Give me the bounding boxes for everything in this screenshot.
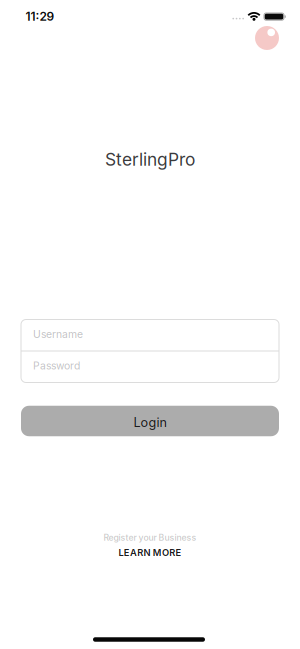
button[interactable]: LEARN MORE <box>119 547 181 558</box>
staticText: Register your Business <box>103 532 196 543</box>
staticText: Password <box>33 359 80 372</box>
button[interactable]: Login <box>21 406 279 436</box>
staticText: Login <box>133 415 166 430</box>
staticText: 11:29 <box>25 9 54 24</box>
button[interactable]: Password <box>21 351 279 382</box>
staticText: SterlingPro <box>105 149 195 170</box>
staticText: LEARN MORE <box>119 547 181 558</box>
button[interactable]: Username <box>21 319 279 351</box>
staticText: Username <box>33 328 83 341</box>
